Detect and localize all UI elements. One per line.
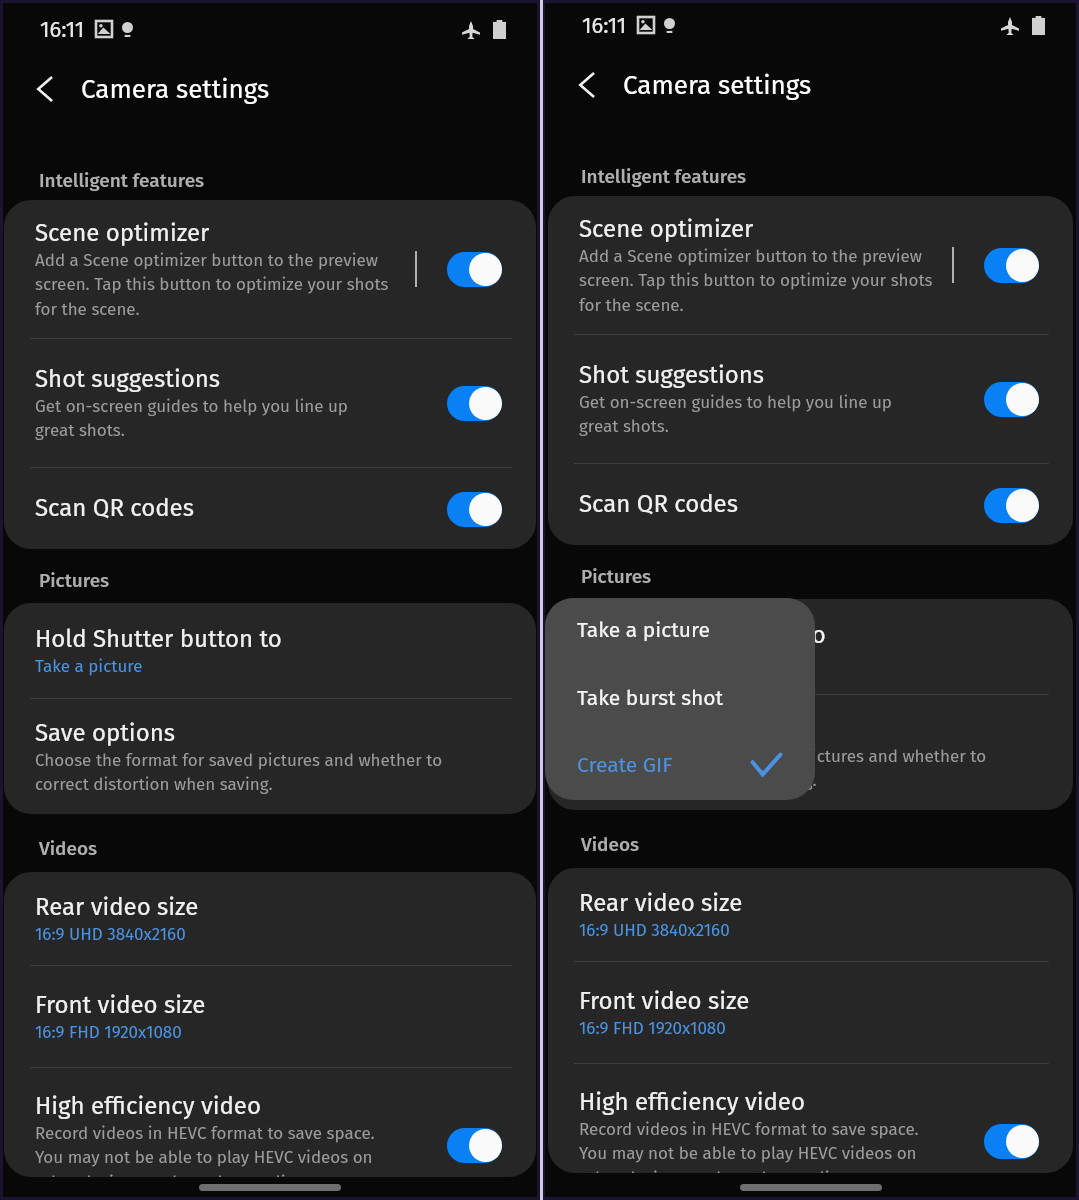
staticText: High efficiency video <box>579 1088 805 1117</box>
button[interactable]: High efficiency video <box>548 1064 1073 1173</box>
staticText: Pictures <box>39 569 110 592</box>
staticText: Shot suggestions <box>35 365 220 394</box>
staticText: Save options <box>35 719 175 748</box>
staticText: Record videos in HEVC format to save spa… <box>579 1119 919 1173</box>
button[interactable]: Rear video size <box>548 868 1073 961</box>
button[interactable]: Front video size <box>4 966 536 1067</box>
staticText: Hold Shutter button to <box>579 621 826 650</box>
staticText: Intelligent features <box>39 169 205 192</box>
staticText: Rear video size <box>579 889 743 918</box>
button[interactable]: Create GIF <box>545 734 815 800</box>
button[interactable]: Take a picture <box>545 598 815 666</box>
staticText: High efficiency video <box>35 1092 261 1121</box>
staticText: Shot suggestions <box>579 361 764 390</box>
staticText: Create GIF <box>577 752 673 777</box>
staticText: Scene optimizer <box>579 215 754 244</box>
staticText: Take a picture <box>35 656 143 676</box>
staticText: Get on-screen guides to help you line up… <box>35 396 348 441</box>
staticText: Videos <box>581 833 640 856</box>
button[interactable]: Scene optimizer <box>548 196 1073 334</box>
button[interactable]: Back <box>19 63 71 115</box>
button[interactable]: Hold Shutter button to <box>4 603 536 698</box>
button[interactable]: Toggle on <box>447 385 502 421</box>
button[interactable]: Toggle on <box>984 381 1039 417</box>
button[interactable]: Save options <box>548 695 1073 810</box>
staticText: Take burst shot <box>577 685 724 710</box>
button[interactable]: Shot suggestions <box>4 339 536 467</box>
staticText: Choose the format for saved pictures and… <box>579 746 987 791</box>
staticText: 16:9 FHD 1920x1080 <box>35 1022 182 1042</box>
staticText: Front video size <box>579 987 750 1016</box>
button[interactable]: High efficiency video <box>4 1068 536 1177</box>
staticText: Pictures <box>581 565 652 588</box>
button[interactable]: Take burst shot <box>545 666 815 734</box>
button[interactable]: Save options <box>4 699 536 814</box>
staticText: Scan QR codes <box>35 494 194 523</box>
button[interactable]: Front video size <box>548 962 1073 1063</box>
staticText: Take a picture <box>577 617 710 642</box>
staticText: Choose the format for saved pictures and… <box>35 750 443 795</box>
button[interactable]: Scan QR codes <box>4 468 536 549</box>
button[interactable]: Rear video size <box>4 872 536 965</box>
button[interactable]: Toggle on <box>984 1123 1039 1159</box>
staticText: Rear video size <box>35 893 199 922</box>
button[interactable]: Scan QR codes <box>548 464 1073 545</box>
staticText: Scan QR codes <box>579 490 738 519</box>
staticText: Add a Scene optimizer button to the prev… <box>35 250 389 320</box>
staticText: 16:11 <box>40 16 85 42</box>
button[interactable]: Toggle on <box>447 491 502 527</box>
button[interactable]: Scene optimizer <box>4 200 536 338</box>
staticText: 16:9 UHD 3840x2160 <box>579 920 730 940</box>
button[interactable]: Toggle on <box>447 1127 502 1163</box>
staticText: 16:11 <box>582 12 627 38</box>
staticText: Intelligent features <box>581 165 747 188</box>
button[interactable]: Toggle on <box>984 487 1039 523</box>
staticText: Front video size <box>35 991 206 1020</box>
staticText: Camera settings <box>81 74 270 105</box>
staticText: Record videos in HEVC format to save spa… <box>35 1123 375 1177</box>
button[interactable]: Toggle on <box>984 247 1039 283</box>
staticText: Camera settings <box>623 70 812 101</box>
staticText: Scene optimizer <box>35 219 210 248</box>
button[interactable]: Hold Shutter button to <box>548 599 1073 694</box>
staticText: Get on-screen guides to help you line up… <box>579 392 892 437</box>
staticText: Hold Shutter button to <box>35 625 282 654</box>
staticText: Add a Scene optimizer button to the prev… <box>579 246 933 316</box>
staticText: 16:9 UHD 3840x2160 <box>35 924 186 944</box>
button[interactable]: Back <box>561 59 613 111</box>
button[interactable]: Shot suggestions <box>548 335 1073 463</box>
staticText: 16:9 FHD 1920x1080 <box>579 1018 726 1038</box>
button[interactable]: Toggle on <box>447 251 502 287</box>
staticText: Videos <box>39 837 98 860</box>
